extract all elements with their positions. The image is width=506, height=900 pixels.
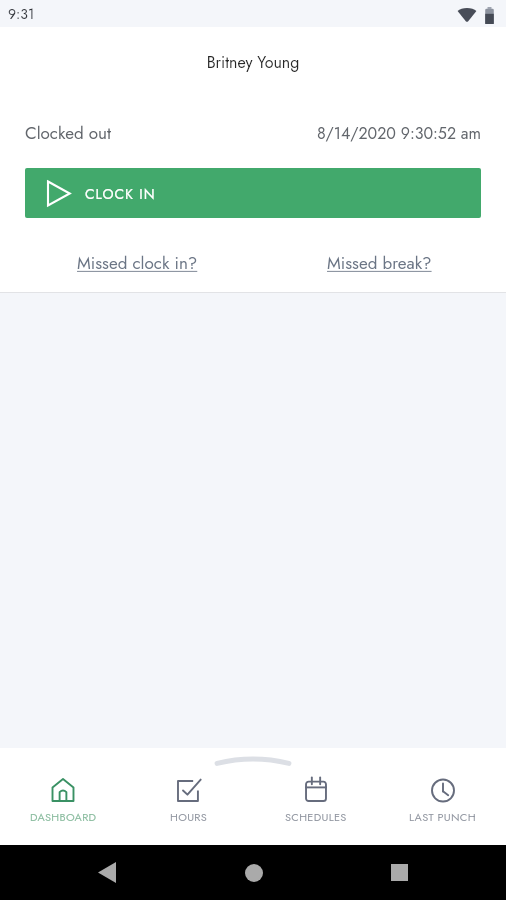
- button[interactable]: DASHBOARD: [0, 748, 126, 845]
- button[interactable]: Back: [79, 845, 134, 900]
- staticText: Missed clock in?: [77, 251, 198, 276]
- button[interactable]: CLOCK IN: [25, 168, 481, 218]
- staticText: SCHEDULES: [285, 809, 347, 825]
- button[interactable]: LAST PUNCH: [379, 748, 506, 845]
- staticText: Missed break?: [327, 251, 432, 276]
- staticText: 9:31: [8, 4, 35, 24]
- staticText: CLOCK IN: [85, 184, 156, 204]
- button[interactable]: Home: [226, 845, 281, 900]
- staticText: LAST PUNCH: [409, 809, 476, 825]
- staticText: HOURS: [170, 809, 208, 825]
- button[interactable]: SCHEDULES: [252, 748, 379, 845]
- staticText: 8/14/2020 9:30:52 am: [317, 122, 481, 145]
- button[interactable]: Missed clock in?: [73, 249, 202, 278]
- button[interactable]: Recent apps: [372, 845, 427, 900]
- button[interactable]: Missed break?: [323, 249, 436, 278]
- staticText: Britney Young: [0, 51, 506, 74]
- staticText: DASHBOARD: [30, 809, 97, 825]
- staticText: Clocked out: [25, 121, 112, 146]
- button[interactable]: HOURS: [126, 748, 252, 845]
